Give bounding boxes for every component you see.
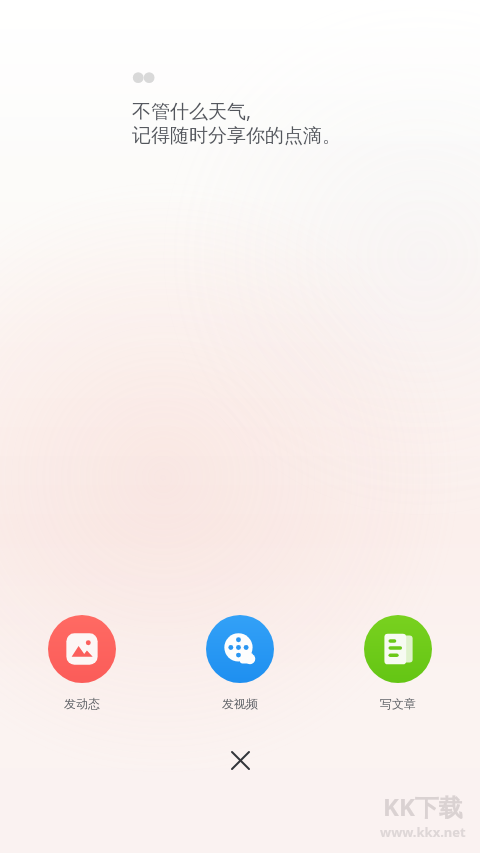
staticText: 写文章 — [380, 696, 416, 711]
staticText: KK下载 — [383, 790, 463, 823]
button[interactable]: 发视频 — [200, 613, 280, 713]
button[interactable]: 关闭 — [222, 742, 258, 778]
staticText: 发视频 — [222, 696, 258, 711]
staticText: 记得随时分享你的点滴。 — [132, 124, 341, 148]
button[interactable]: 写文章 — [358, 613, 438, 713]
staticText: 不管什么天气, — [132, 98, 252, 124]
staticText: www.kkx.net — [380, 823, 466, 841]
button[interactable]: 发动态 — [42, 613, 122, 713]
staticText: 发动态 — [64, 696, 100, 711]
